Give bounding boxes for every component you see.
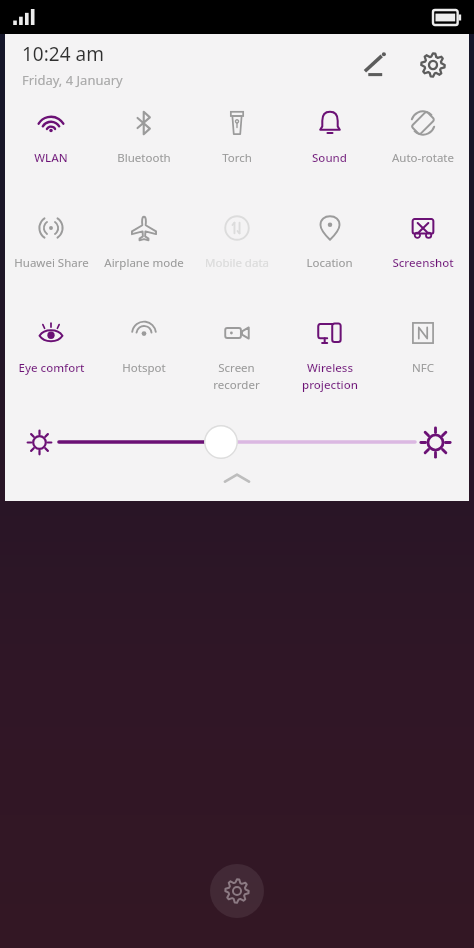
staticText: Huawei Share <box>14 255 89 271</box>
button[interactable]: Collapse panel <box>5 470 469 501</box>
button[interactable]: Torch <box>190 96 283 201</box>
staticText: Screen recorder <box>213 360 260 393</box>
staticText: Friday, 4 January <box>22 71 123 89</box>
staticText: Auto-rotate <box>392 150 454 166</box>
button[interactable]: Auto-rotate <box>376 96 469 201</box>
staticText: Sound <box>312 150 347 166</box>
staticText: Bluetooth <box>117 150 171 166</box>
staticText: Location <box>306 255 353 271</box>
button[interactable]: Brightness <box>59 420 415 464</box>
staticText: NFC <box>412 360 434 376</box>
staticText: WLAN <box>34 150 68 166</box>
button[interactable]: Wireless projection <box>283 306 376 414</box>
button[interactable]: Settings <box>411 43 455 87</box>
button[interactable]: Hotspot <box>97 306 190 414</box>
button[interactable]: Huawei Share <box>5 201 97 306</box>
staticText: Wireless projection <box>302 360 358 393</box>
staticText: Torch <box>222 150 252 166</box>
button[interactable]: Location <box>283 201 376 306</box>
staticText: Mobile data <box>205 255 269 271</box>
staticText: Hotspot <box>122 360 166 376</box>
staticText: Screenshot <box>392 255 454 271</box>
button[interactable]: WLAN <box>5 96 97 201</box>
button[interactable]: Screen recorder <box>190 306 283 414</box>
button[interactable]: Bluetooth <box>97 96 190 201</box>
button[interactable]: Settings <box>210 864 264 918</box>
button[interactable]: Airplane mode <box>97 201 190 306</box>
button[interactable]: NFC <box>376 306 469 414</box>
button[interactable]: Eye comfort <box>5 306 97 414</box>
button[interactable]: Raise brightness <box>415 422 455 462</box>
staticText: 10:24 am <box>22 41 104 67</box>
button[interactable]: Mobile data <box>190 201 283 306</box>
button[interactable]: Lower brightness <box>19 422 59 462</box>
staticText: Eye comfort <box>18 360 85 376</box>
button[interactable]: Edit <box>353 43 397 87</box>
button[interactable]: Sound <box>283 96 376 201</box>
button[interactable]: Screenshot <box>376 201 469 306</box>
staticText: Airplane mode <box>104 255 184 271</box>
